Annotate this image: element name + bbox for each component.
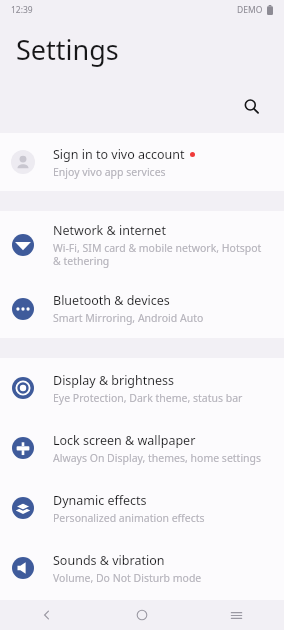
staticText: Smart Mirroring, Android Auto (53, 311, 204, 325)
staticText: Display & brightness (53, 372, 175, 389)
staticText: Bluetooth & devices (53, 292, 170, 309)
staticText: Sign in to vivo account (53, 146, 185, 163)
staticText: Volume, Do Not Disturb mode (53, 571, 202, 585)
staticText: Wi-Fi, SIM card & mobile network, Hotspo… (53, 241, 270, 268)
button[interactable]: Sign in to vivo account (0, 133, 284, 191)
staticText: Network & internet (53, 222, 166, 239)
button[interactable]: Sounds & vibration (0, 538, 284, 598)
staticText: Always On Display, themes, home settings (53, 451, 262, 465)
staticText: 12:39 (11, 4, 33, 16)
button[interactable]: Display & brightness (0, 358, 284, 418)
button[interactable]: Network & internet (0, 211, 284, 279)
staticText: Enjoy vivo app services (53, 165, 166, 179)
staticText: Sounds & vibration (53, 552, 165, 569)
button[interactable]: Dynamic effects (0, 478, 284, 538)
staticText: Dynamic effects (53, 492, 147, 509)
button[interactable]: Back (0, 600, 94, 630)
staticText: Lock screen & wallpaper (53, 432, 196, 449)
staticText: Settings (16, 31, 119, 68)
button[interactable]: Search settings (236, 91, 266, 121)
button[interactable]: Recent apps (189, 600, 284, 630)
staticText: Eye Protection, Dark theme, status bar (53, 391, 243, 405)
button[interactable]: Home (94, 600, 189, 630)
staticText: DEMO (237, 4, 263, 16)
button[interactable]: Bluetooth & devices (0, 279, 284, 338)
staticText: Personalized animation effects (53, 511, 205, 525)
button[interactable]: Lock screen & wallpaper (0, 418, 284, 478)
